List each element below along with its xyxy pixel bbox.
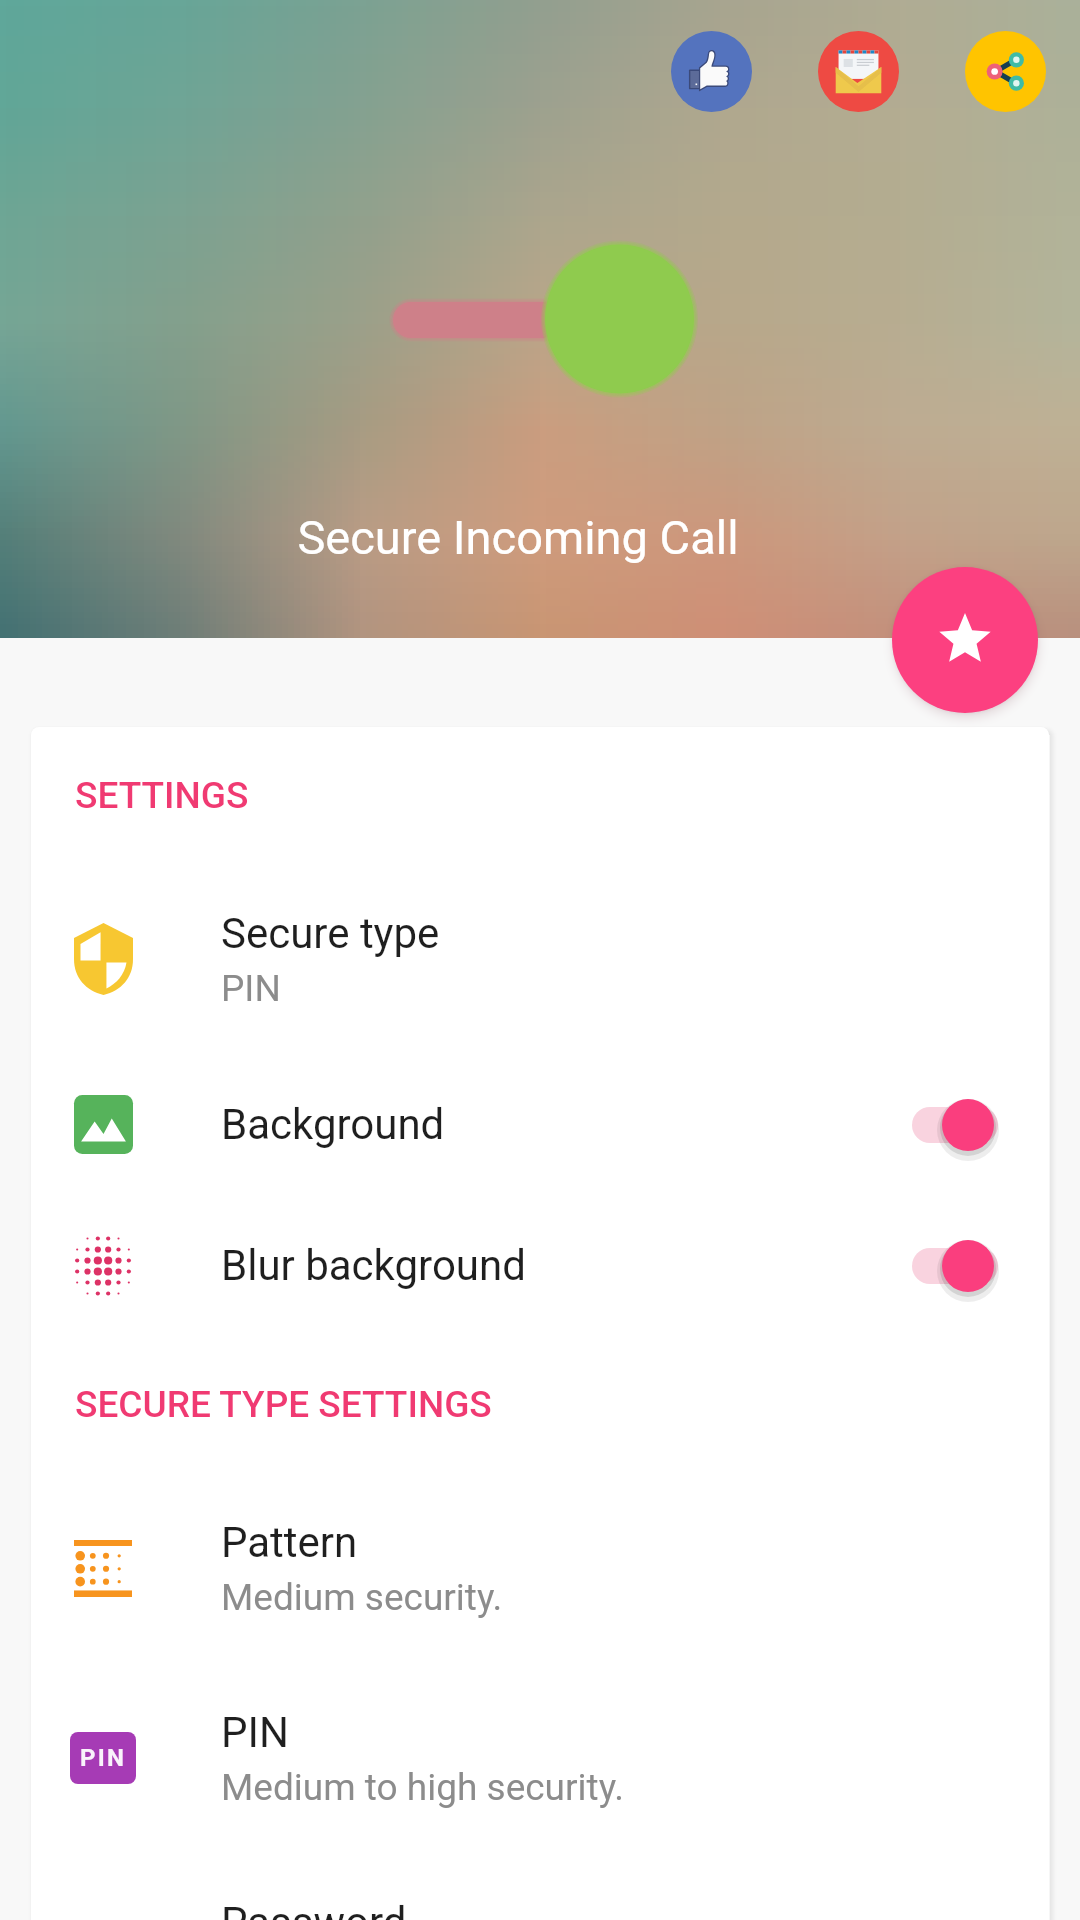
staticText: Secure type: [221, 909, 440, 958]
button[interactable]: Background: [31, 1054, 1049, 1195]
staticText: Medium to high security.: [221, 1766, 624, 1809]
button[interactable]: PIN: [31, 1853, 1049, 1920]
button[interactable]: Like: [671, 31, 752, 112]
button[interactable]: Favorite: [892, 567, 1038, 713]
button[interactable]: Share: [965, 31, 1046, 112]
staticText: Pattern: [221, 1518, 358, 1567]
button[interactable]: Blur background: [31, 1195, 1049, 1336]
staticText: PIN: [221, 1708, 289, 1757]
staticText: Secure Incoming Call: [0, 510, 1058, 565]
staticText: SETTINGS: [75, 774, 249, 817]
button[interactable]: Secure type: [31, 864, 1049, 1054]
staticText: PIN: [221, 967, 281, 1010]
staticText: PIN: [80, 1744, 127, 1772]
staticText: Background: [221, 1100, 445, 1149]
staticText: Password: [221, 1898, 407, 1920]
button[interactable]: Mail: [818, 31, 899, 112]
button[interactable]: Toggle Blur background: [907, 1226, 1003, 1306]
staticText: SECURE TYPE SETTINGS: [75, 1383, 492, 1426]
staticText: Blur background: [221, 1241, 526, 1290]
button[interactable]: Pattern: [31, 1473, 1049, 1663]
button[interactable]: PIN: [31, 1663, 1049, 1853]
button[interactable]: Toggle Background: [907, 1085, 1003, 1165]
staticText: Medium security.: [221, 1576, 503, 1619]
